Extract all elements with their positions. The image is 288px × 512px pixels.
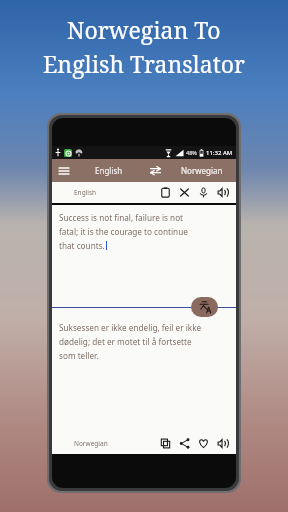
button[interactable]: Share translation: [175, 434, 194, 453]
button[interactable]: Norwegian: [167, 159, 236, 182]
button[interactable]: Voice input: [194, 183, 213, 202]
staticText: English: [95, 165, 123, 176]
button[interactable]: Menu: [52, 159, 75, 182]
staticText: Norwegian: [181, 165, 223, 176]
button[interactable]: Suksessen er ikke endelig, feil er ikke: [52, 317, 236, 433]
staticText: 48%: [186, 149, 197, 156]
button[interactable]: Copy translation: [156, 434, 175, 453]
staticText: som teller.: [59, 350, 99, 361]
button[interactable]: Add to favourites: [194, 434, 213, 453]
button[interactable]: Swap languages: [143, 159, 167, 182]
button[interactable]: Translate: [191, 297, 218, 317]
staticText: fatal; it is the courage to continue: [59, 226, 188, 237]
button[interactable]: Speak source text: [213, 183, 232, 202]
button[interactable]: Speak translation: [213, 434, 232, 453]
button[interactable]: Success is not final, failure is not: [52, 205, 236, 297]
staticText: Norwegian: [74, 439, 108, 448]
staticText: Success is not final, failure is not: [59, 212, 184, 223]
button[interactable]: English: [75, 159, 143, 182]
button[interactable]: Paste from clipboard: [156, 183, 175, 202]
staticText: English Translator: [43, 48, 245, 79]
staticText: Norwegian To: [67, 14, 221, 45]
staticText: Suksessen er ikke endelig, feil er ikke: [59, 322, 202, 333]
staticText: 11:32 AM: [206, 149, 233, 157]
staticText: English: [74, 188, 97, 197]
staticText: dødelig; det er motet til å fortsette: [59, 336, 192, 347]
staticText: that counts.: [59, 240, 105, 251]
button[interactable]: Clear text: [175, 183, 194, 202]
